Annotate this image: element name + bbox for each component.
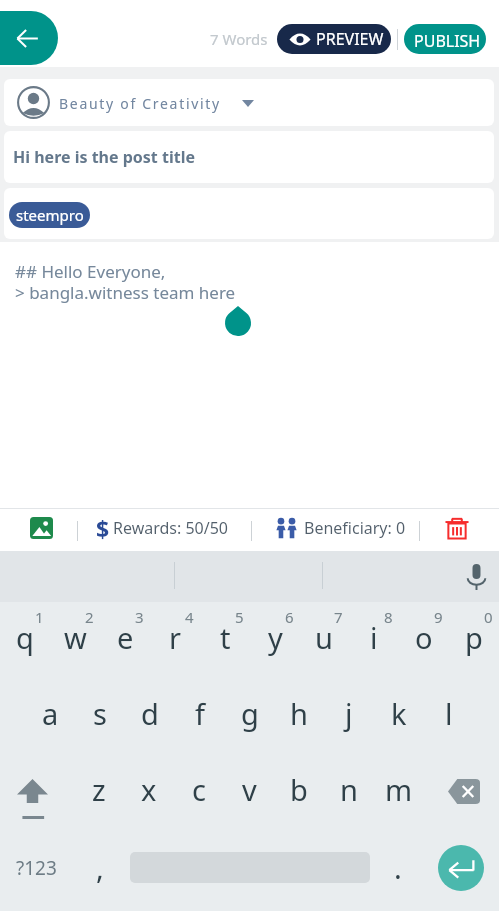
staticText: b <box>290 770 308 809</box>
button[interactable]: Delete draft <box>434 509 479 547</box>
staticText: x <box>141 770 157 809</box>
button[interactable]: c <box>174 754 224 830</box>
button[interactable]: 7 <box>299 602 349 678</box>
button[interactable]: , <box>74 830 130 908</box>
staticText: PREVIEW <box>316 28 384 50</box>
button[interactable]: l <box>424 678 474 754</box>
button[interactable]: Shift <box>0 754 74 830</box>
button[interactable]: ?123 <box>0 830 74 908</box>
staticText: n <box>340 770 358 809</box>
staticText: 3 <box>135 607 144 627</box>
staticText: PUBLISH <box>414 30 481 52</box>
staticText: > bangla.witness team here <box>15 281 236 304</box>
staticText: o <box>415 618 433 657</box>
button[interactable]: f <box>175 678 225 754</box>
button[interactable]: 2 <box>50 602 100 678</box>
button[interactable]: n <box>324 754 374 830</box>
staticText: j <box>345 694 353 733</box>
staticText: m <box>385 770 413 809</box>
button[interactable]: Insert image <box>19 509 64 547</box>
staticText: 7 <box>334 607 343 627</box>
staticText: v <box>242 770 257 809</box>
button[interactable]: Back <box>0 11 58 65</box>
staticText: $ <box>96 513 110 544</box>
staticText: Beneficiary: 0 <box>304 517 406 539</box>
staticText: ?123 <box>16 855 57 881</box>
staticText: Beauty of Creativity <box>59 94 221 113</box>
staticText: 8 <box>384 607 393 627</box>
staticText: 4 <box>185 607 194 627</box>
button[interactable]: d <box>125 678 175 754</box>
button[interactable]: 0 <box>449 602 499 678</box>
button[interactable]: Hi here is the post title <box>4 131 494 183</box>
staticText: a <box>42 694 59 733</box>
staticText: c <box>192 770 206 809</box>
staticText: e <box>117 618 134 657</box>
button[interactable]: 1 <box>0 602 50 678</box>
button[interactable]: Voice input <box>455 554 498 599</box>
staticText: t <box>220 618 231 657</box>
button[interactable]: 9 <box>399 602 449 678</box>
button[interactable]: $ <box>96 511 229 545</box>
button[interactable]: 4 <box>150 602 200 678</box>
button[interactable]: Enter <box>438 845 484 891</box>
button[interactable]: Beauty of Creativity <box>4 79 494 126</box>
button[interactable]: k <box>374 678 424 754</box>
staticText: 7 Words <box>210 29 268 49</box>
staticText: f <box>195 694 205 733</box>
button[interactable]: m <box>374 754 424 830</box>
staticText: i <box>370 618 378 657</box>
staticText: r <box>169 618 181 657</box>
button[interactable]: steempro <box>4 188 494 239</box>
button[interactable]: j <box>324 678 374 754</box>
staticText: 0 <box>484 607 493 627</box>
staticText: . <box>394 848 402 887</box>
button[interactable]: Beneficiary: 0 <box>275 511 406 545</box>
button[interactable]: 6 <box>250 602 300 678</box>
button[interactable]: b <box>274 754 324 830</box>
button[interactable]: z <box>74 754 124 830</box>
staticText: 2 <box>85 607 94 627</box>
button[interactable]: g <box>225 678 275 754</box>
staticText: 5 <box>235 607 244 627</box>
staticText: 9 <box>434 607 443 627</box>
button[interactable]: steempro <box>9 202 90 228</box>
staticText: u <box>315 618 333 657</box>
staticText: , <box>96 848 104 887</box>
staticText: Hi here is the post title <box>13 146 195 168</box>
button[interactable]: s <box>75 678 125 754</box>
staticText: w <box>64 618 87 657</box>
staticText: y <box>268 618 283 657</box>
staticText: s <box>93 694 107 733</box>
button[interactable]: h <box>274 678 324 754</box>
staticText: h <box>290 694 308 733</box>
staticText: g <box>241 694 259 733</box>
button[interactable]: 5 <box>200 602 250 678</box>
staticText: p <box>465 618 483 657</box>
button[interactable]: Backspace <box>424 754 499 830</box>
staticText: 1 <box>35 607 44 627</box>
staticText: q <box>16 618 34 657</box>
staticText: Rewards: 50/50 <box>113 517 229 539</box>
button[interactable]: v <box>224 754 274 830</box>
staticText: d <box>141 694 159 733</box>
button[interactable]: . <box>372 830 424 908</box>
staticText: steempro <box>16 205 84 225</box>
staticText: k <box>391 694 407 733</box>
button[interactable]: 8 <box>349 602 399 678</box>
button[interactable]: PREVIEW <box>277 24 391 54</box>
staticText: 6 <box>285 607 294 627</box>
button[interactable]: PUBLISH <box>404 24 486 54</box>
staticText: ## Hello Everyone, <box>15 260 166 283</box>
button[interactable]: a <box>25 678 75 754</box>
staticText: l <box>445 694 453 733</box>
button[interactable]: x <box>124 754 174 830</box>
button[interactable]: 3 <box>100 602 150 678</box>
staticText: z <box>92 770 106 809</box>
